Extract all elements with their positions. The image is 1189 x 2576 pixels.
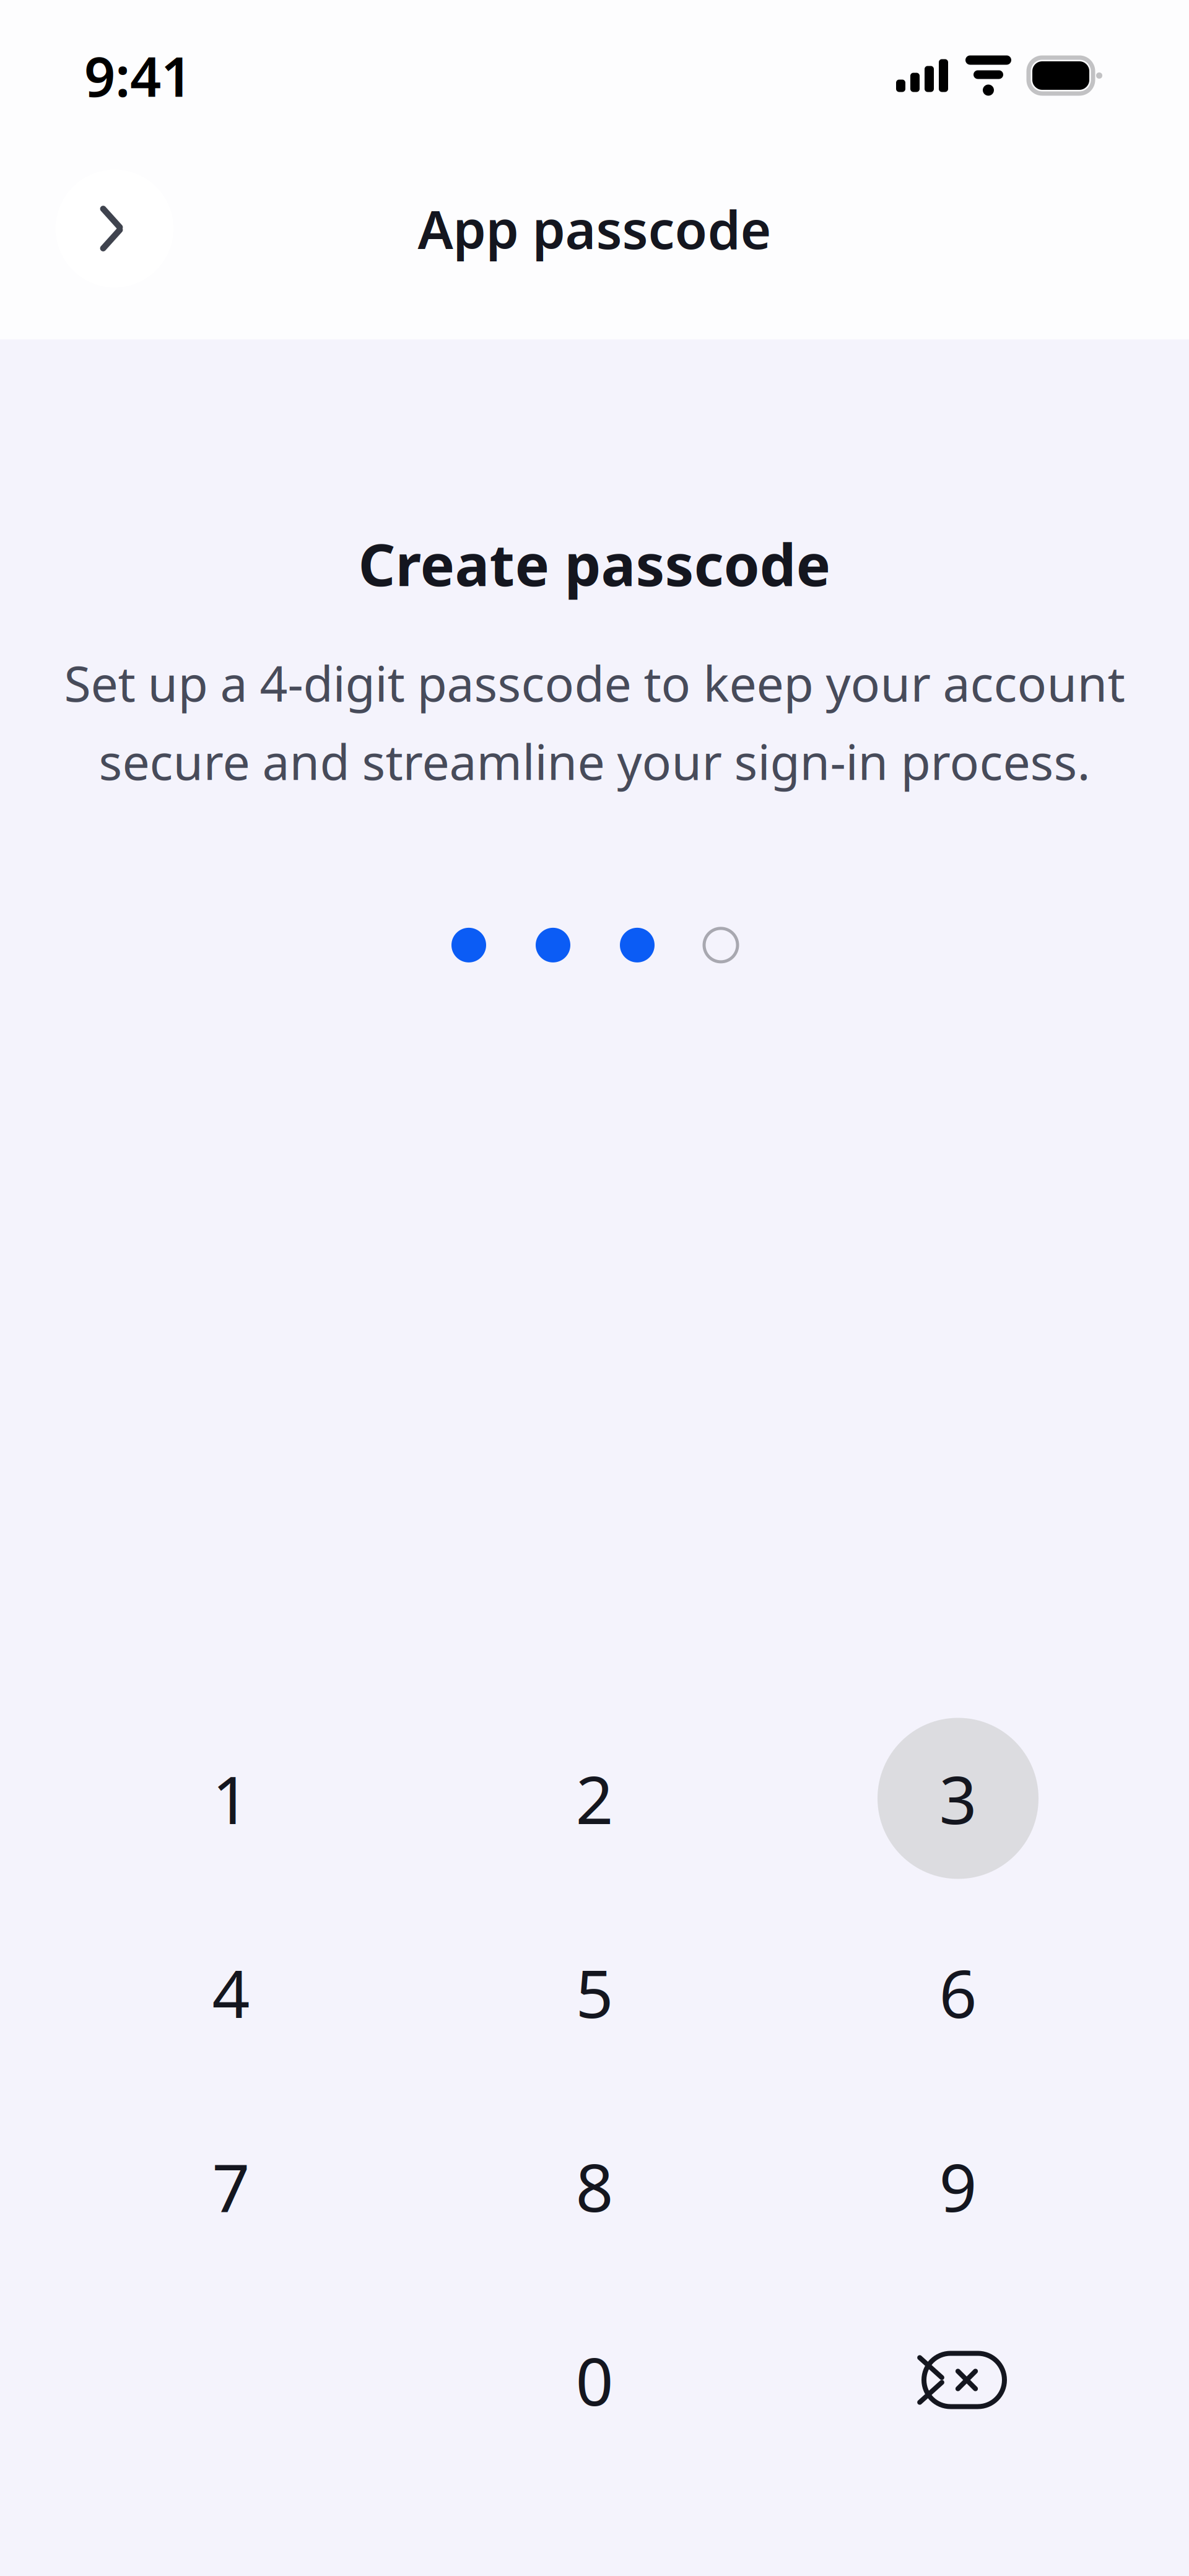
button[interactable]: 7 [49, 2089, 413, 2283]
button[interactable]: 9 [776, 2089, 1140, 2283]
button[interactable]: Delete [776, 2283, 1140, 2477]
button[interactable]: 5 [413, 1895, 776, 2089]
button[interactable]: 1 [49, 1701, 413, 1895]
staticText: 5 [576, 1948, 613, 2036]
staticText: secure and streamline your sign-in proce… [99, 729, 1090, 793]
staticText: App passcode [418, 193, 771, 264]
staticText: 0 [576, 2336, 613, 2424]
staticText: 6 [939, 1948, 977, 2036]
staticText: 2 [576, 1755, 613, 1842]
staticText: 9:41 [84, 39, 192, 112]
button[interactable]: 2 [413, 1701, 776, 1895]
button[interactable]: 6 [776, 1895, 1140, 2089]
button[interactable]: 4 [49, 1895, 413, 2089]
staticText: 3 [939, 1755, 977, 1842]
button[interactable]: Back [56, 170, 173, 287]
staticText: Create passcode [358, 525, 831, 602]
staticText: 7 [212, 2142, 250, 2230]
staticText: 9 [939, 2142, 977, 2230]
button[interactable]: 0 [413, 2283, 776, 2477]
staticText: 8 [576, 2142, 613, 2230]
staticText: 1 [212, 1755, 250, 1842]
staticText: Set up a 4-digit passcode to keep your a… [64, 650, 1125, 715]
button[interactable]: 8 [413, 2089, 776, 2283]
button[interactable]: 3 [776, 1701, 1140, 1895]
staticText: 4 [212, 1948, 250, 2036]
